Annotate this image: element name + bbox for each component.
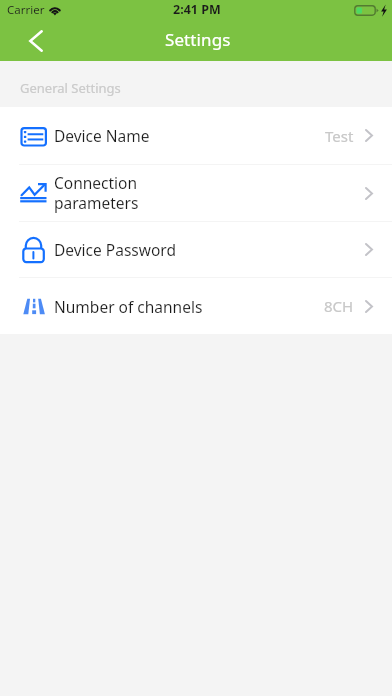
staticText: Device Name bbox=[54, 125, 150, 146]
button[interactable]: Back bbox=[18, 23, 54, 59]
button[interactable]: Connection parameters bbox=[0, 165, 392, 221]
staticText: Test bbox=[325, 126, 354, 146]
button[interactable]: Number of channels bbox=[0, 278, 392, 334]
staticText: Connection parameters bbox=[54, 172, 139, 214]
staticText: Number of channels bbox=[54, 296, 203, 317]
button[interactable]: Device Password bbox=[0, 222, 392, 277]
staticText: 2:41 PM bbox=[173, 1, 221, 18]
button[interactable]: Device Name bbox=[0, 107, 392, 164]
staticText: Settings bbox=[165, 28, 231, 51]
staticText: 8CH bbox=[324, 296, 354, 316]
staticText: General Settings bbox=[20, 79, 121, 97]
staticText: Device Password bbox=[54, 239, 176, 260]
staticText: Carrier bbox=[7, 2, 45, 18]
